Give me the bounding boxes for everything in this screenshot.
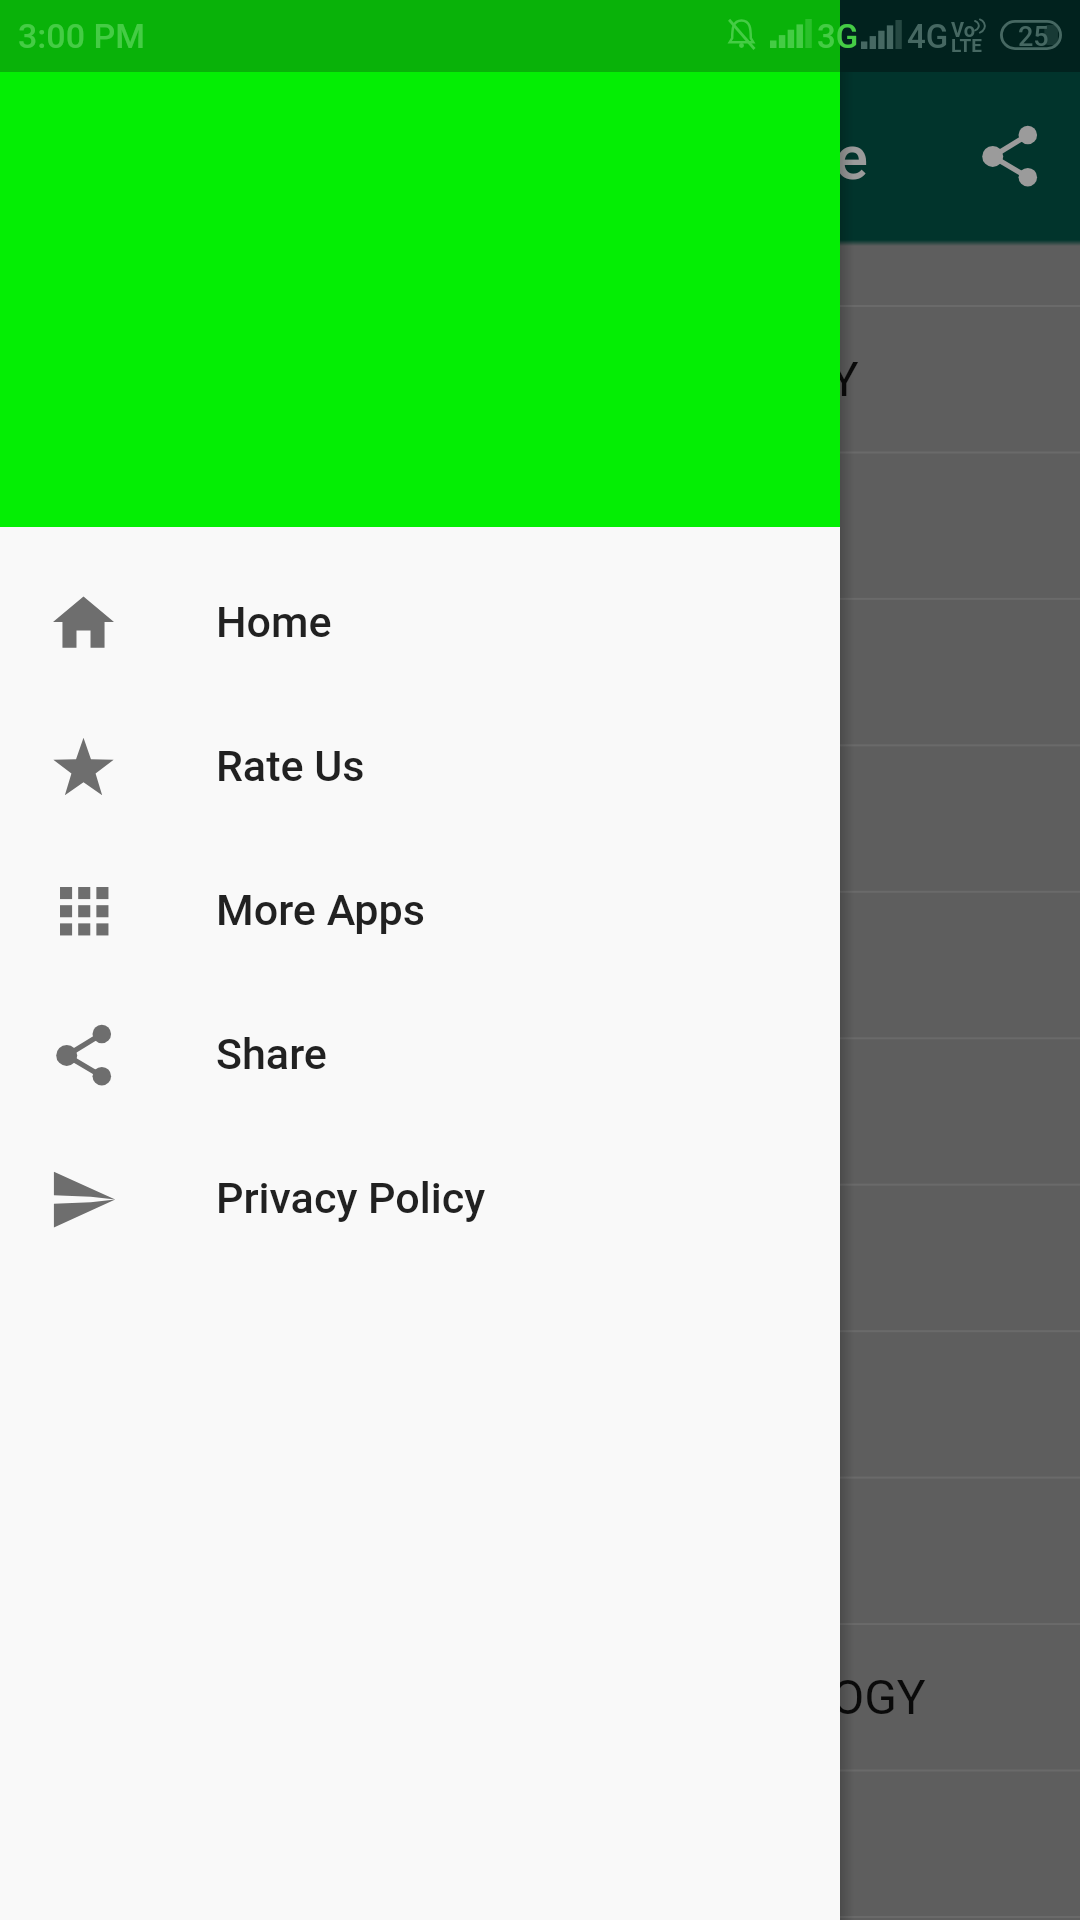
button[interactable]: MATHEMATICS [0, 1772, 1080, 1916]
staticText: Vo [951, 18, 975, 41]
staticText: Share [216, 1029, 327, 1079]
button[interactable]: Share [0, 982, 840, 1126]
staticText: More Apps [216, 885, 425, 935]
staticText: 4G [907, 17, 949, 56]
button[interactable]: MOVIES AND MUSIC [0, 1039, 1080, 1183]
staticText: LTE [951, 34, 982, 56]
staticText: Privacy Policy [216, 1173, 486, 1223]
button[interactable]: Close navigation drawer [840, 0, 1080, 1920]
staticText: MOVIES AND MUSIC [90, 1083, 531, 1139]
staticText: Rate Us [216, 741, 365, 791]
staticText: 3G [817, 17, 859, 56]
button[interactable]: SCIENCE AND TECHNOLOGY [0, 453, 1080, 597]
staticText: WORLD HISTORY AND GEOGRAPHY [90, 351, 859, 407]
staticText: Home [216, 597, 332, 647]
button[interactable]: Privacy Policy [0, 1126, 840, 1270]
button[interactable]: SPORTS AND GAMES [0, 600, 1080, 744]
button[interactable]: Home [0, 550, 840, 694]
button[interactable]: BOOKS AND AUTHORS [0, 746, 1080, 890]
button[interactable]: More Apps [0, 838, 840, 982]
staticText: HUMAN ANATOMY AND PSYCHOLOGY [90, 1669, 926, 1725]
button[interactable]: ARTS AND CULTURE [0, 893, 1080, 1037]
button[interactable]: Rate Us [0, 694, 840, 838]
button[interactable]: Share [947, 93, 1071, 217]
staticText: 3:00 PM [18, 16, 145, 56]
button[interactable]: WORLD ECONOMY [0, 1332, 1080, 1476]
staticText: Quiz - General Knowledge [156, 121, 869, 194]
staticText: BOOKS AND AUTHORS [90, 790, 582, 846]
button[interactable]: WORLD HISTORY AND GEOGRAPHY [0, 307, 1080, 451]
staticText: SPORTS AND GAMES [90, 644, 549, 700]
staticText: SCIENCE AND TECHNOLOGY [90, 497, 711, 553]
button[interactable]: HUMAN ANATOMY AND PSYCHOLOGY [0, 1625, 1080, 1769]
staticText: 25 [1018, 21, 1049, 53]
button[interactable]: COMPUTER AWARENESS [0, 1186, 1080, 1330]
button[interactable]: CURRENT AFFAIRS [0, 1479, 1080, 1623]
